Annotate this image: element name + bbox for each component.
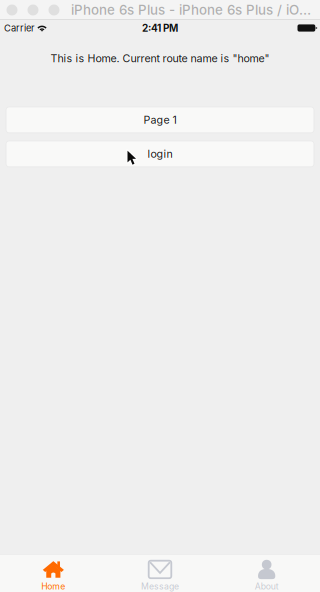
staticText: This is Home. Current route name is "hom… [50,52,269,65]
button[interactable]: login [6,141,314,167]
button[interactable]: About [213,554,320,592]
staticText: Carrier [4,22,35,34]
staticText: Page 1 [143,113,176,126]
staticText: Home [41,581,65,592]
button[interactable]: Home [0,554,107,592]
staticText: iPhone 6s Plus - iPhone 6s Plus / iO… [71,2,311,18]
staticText: Message [141,581,179,592]
button[interactable]: Page 1 [6,107,314,133]
staticText: login [147,147,172,160]
button[interactable]: Message [107,554,213,592]
staticText: 2:41 PM [142,22,178,34]
staticText: About [255,581,279,592]
